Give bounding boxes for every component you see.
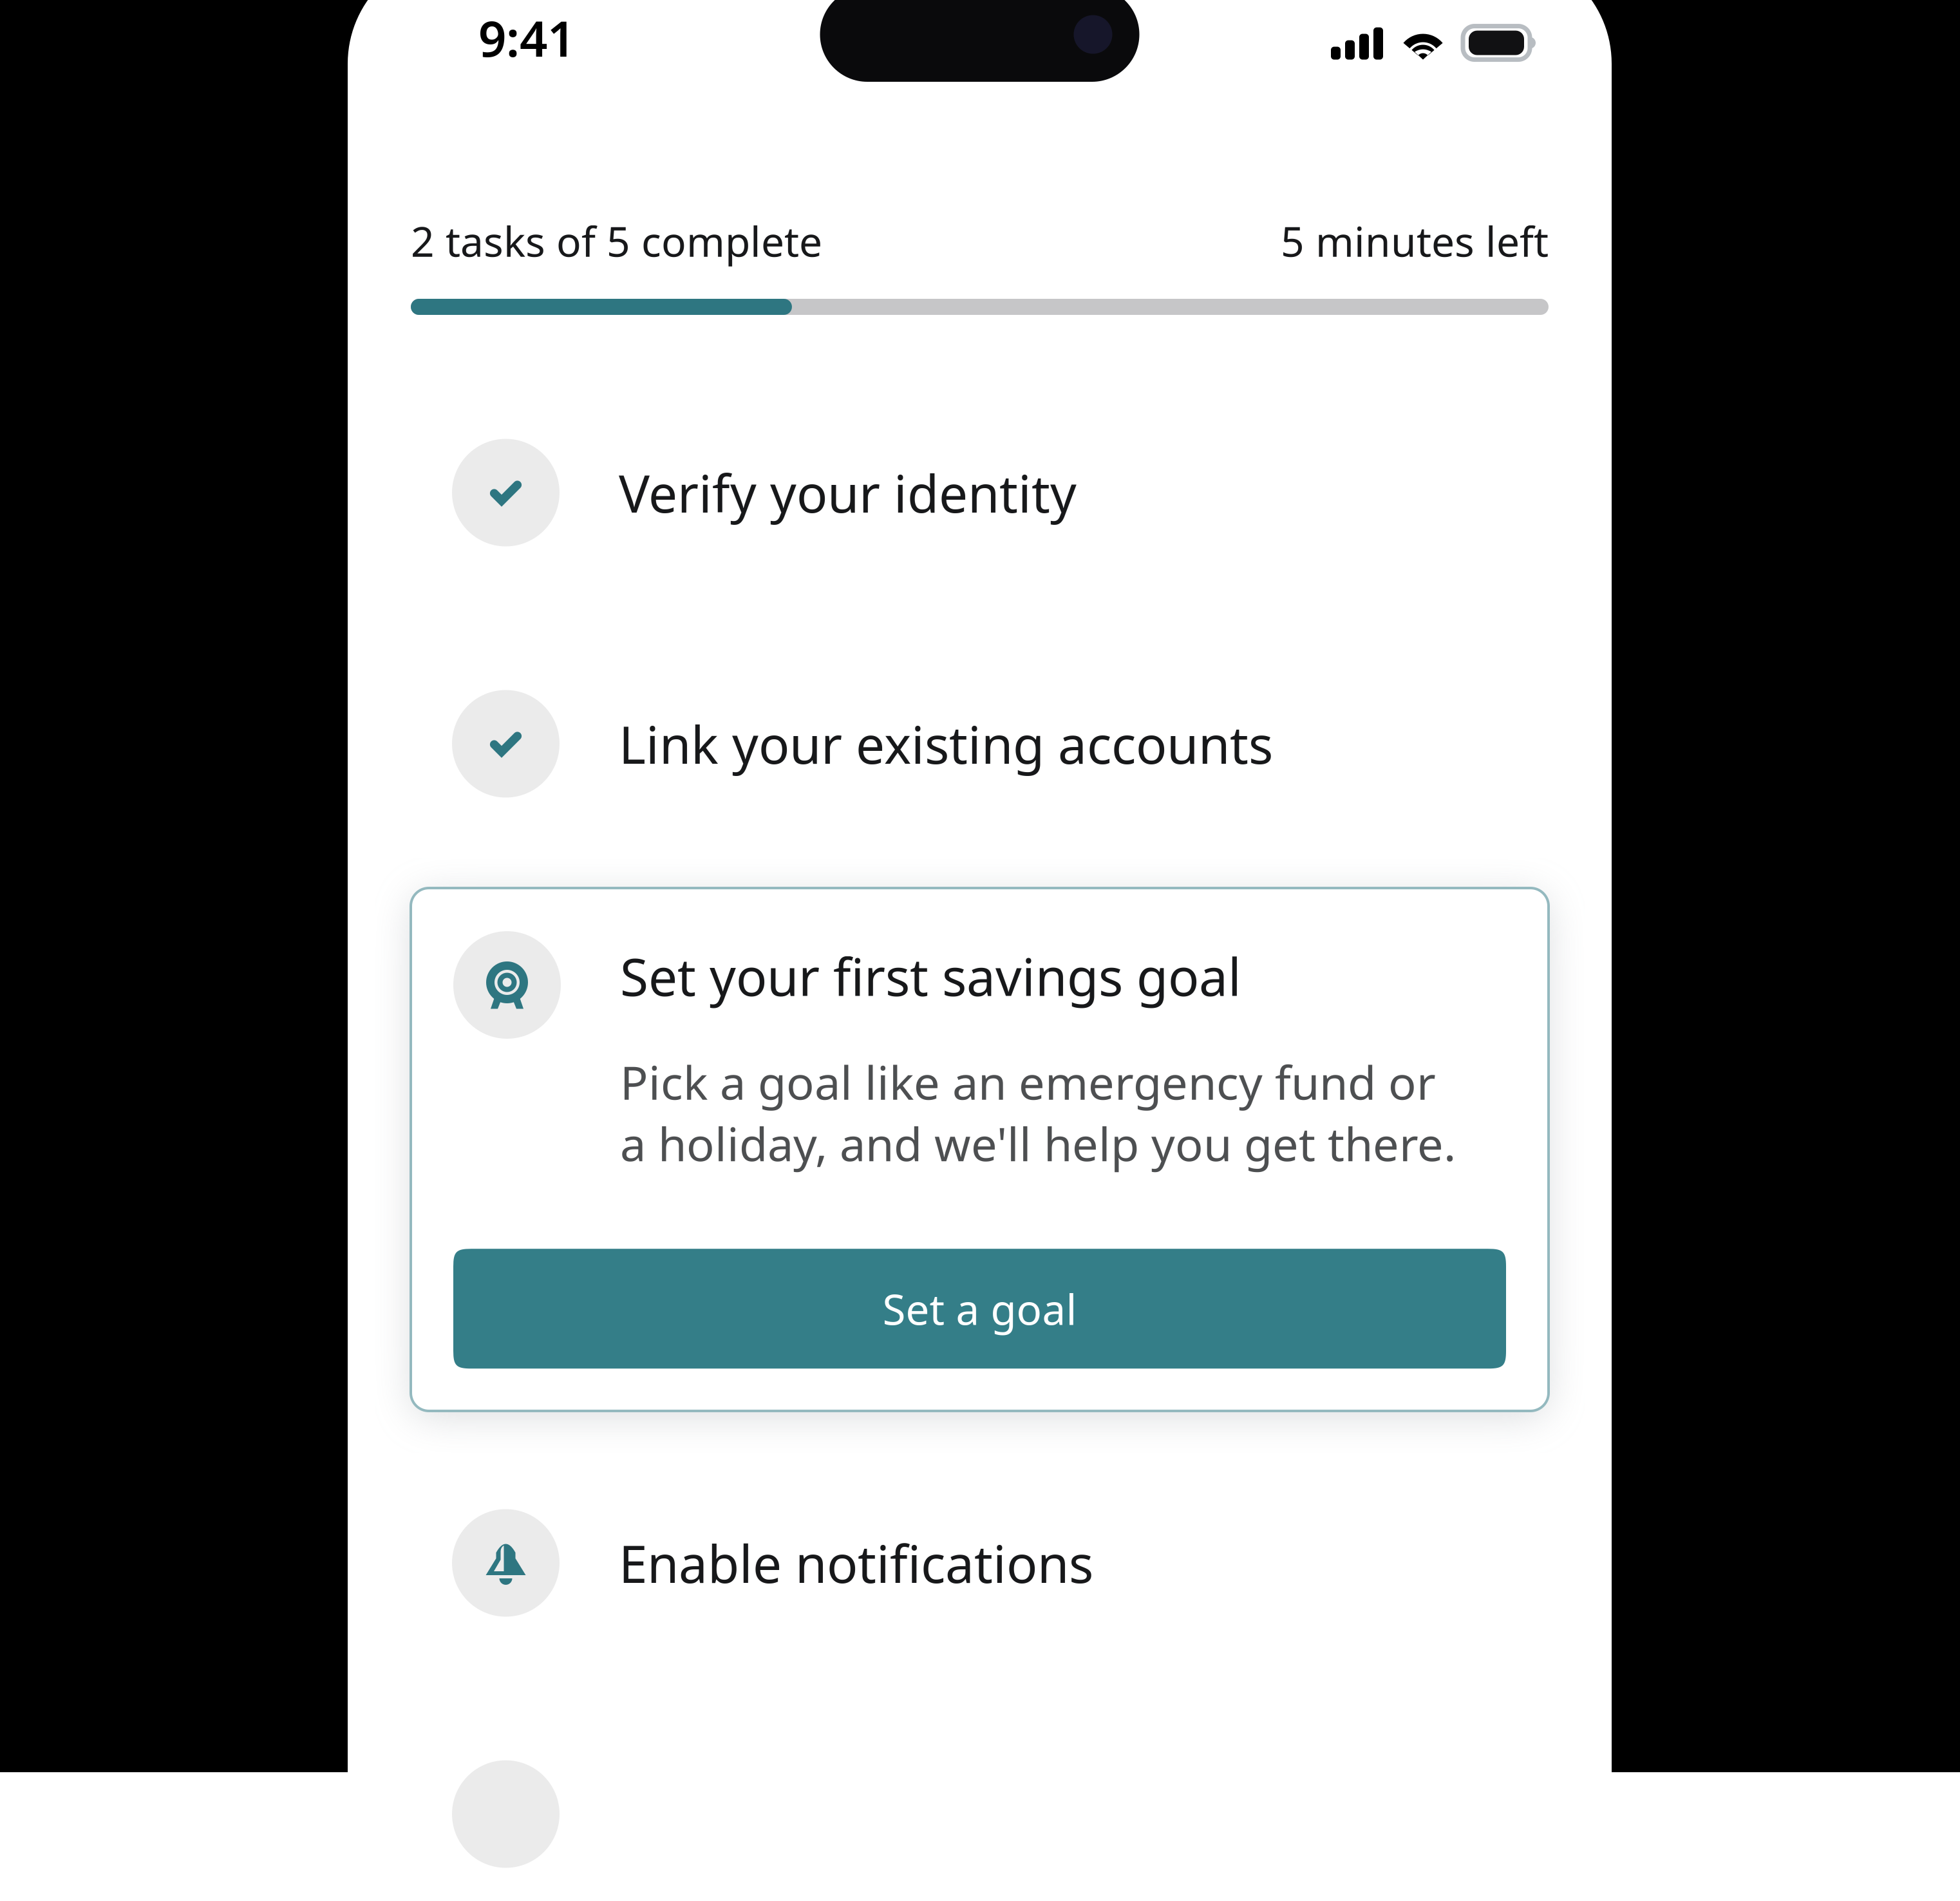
staticText: 2 tasks of 5 complete xyxy=(411,213,822,268)
staticText: 9:41 xyxy=(478,5,575,70)
staticText: Pick a goal like an emergency fund or a … xyxy=(620,1051,1456,1174)
button[interactable]: Enable notifications xyxy=(411,1437,1549,1688)
button[interactable]: Verify your identity xyxy=(411,367,1549,618)
staticText: Link your existing accounts xyxy=(619,710,1273,778)
staticText: Enable notifications xyxy=(619,1529,1093,1597)
button[interactable]: Set a goal xyxy=(453,1249,1506,1369)
staticText: Set your first savings goal xyxy=(620,942,1241,1010)
staticText: Set a goal xyxy=(882,1281,1077,1337)
button[interactable]: Link your existing accounts xyxy=(411,618,1549,869)
staticText: Verify your identity xyxy=(619,458,1077,527)
staticText: 5 minutes left xyxy=(1281,213,1549,268)
